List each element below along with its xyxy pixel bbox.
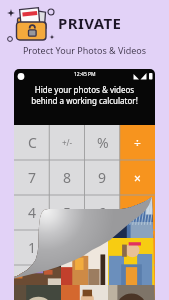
button[interactable]: 4	[14, 195, 50, 230]
staticText: 7	[28, 168, 37, 187]
button[interactable]: −	[120, 195, 155, 230]
button[interactable]: %	[85, 125, 120, 160]
button[interactable]: +/-	[50, 125, 85, 160]
staticText: .	[101, 273, 105, 292]
staticText: ×	[134, 170, 141, 186]
staticText: PRIVATE	[58, 13, 122, 33]
staticText: −	[134, 205, 141, 221]
staticText: 0	[63, 273, 72, 292]
button[interactable]: 9	[85, 160, 120, 195]
staticText: 8	[63, 168, 72, 187]
staticText: 1	[28, 238, 37, 257]
button[interactable]: 1	[14, 230, 50, 265]
staticText: +/-	[62, 137, 73, 148]
button[interactable]: =	[120, 265, 155, 300]
staticText: 2	[63, 238, 72, 257]
button[interactable]: 6	[85, 195, 120, 230]
staticText: 3	[98, 238, 107, 257]
button[interactable]: 7	[14, 160, 50, 195]
staticText: 12:45 PM	[74, 71, 96, 78]
button[interactable]: 2	[50, 230, 85, 265]
button[interactable]: ÷	[120, 125, 155, 160]
staticText: 4	[28, 203, 37, 222]
button[interactable]: 5	[50, 195, 85, 230]
staticText: +	[134, 240, 141, 256]
button[interactable]: 0	[50, 265, 85, 300]
button[interactable]: .	[85, 265, 120, 300]
button[interactable]: C	[14, 125, 50, 160]
button[interactable]: 3	[85, 230, 120, 265]
staticText: C	[28, 133, 37, 152]
staticText: =	[134, 275, 141, 291]
staticText: 6	[98, 203, 107, 222]
staticText: 5	[63, 203, 72, 222]
button[interactable]: +	[120, 230, 155, 265]
staticText: Hide your photos & videos behind a worki…	[14, 84, 155, 107]
button[interactable]	[14, 265, 50, 300]
button[interactable]: ×	[120, 160, 155, 195]
staticText: 9	[98, 168, 107, 187]
staticText: %	[97, 133, 109, 152]
staticText: ÷	[134, 135, 141, 151]
button[interactable]: 8	[50, 160, 85, 195]
staticText: Protect Your Photos & Videos	[0, 44, 169, 56]
